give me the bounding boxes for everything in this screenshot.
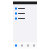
button[interactable]: Tab [13, 42, 19, 48]
button[interactable]: Tab [31, 42, 37, 48]
button[interactable]: Tab [19, 42, 25, 48]
button[interactable]: Tab [25, 42, 31, 48]
